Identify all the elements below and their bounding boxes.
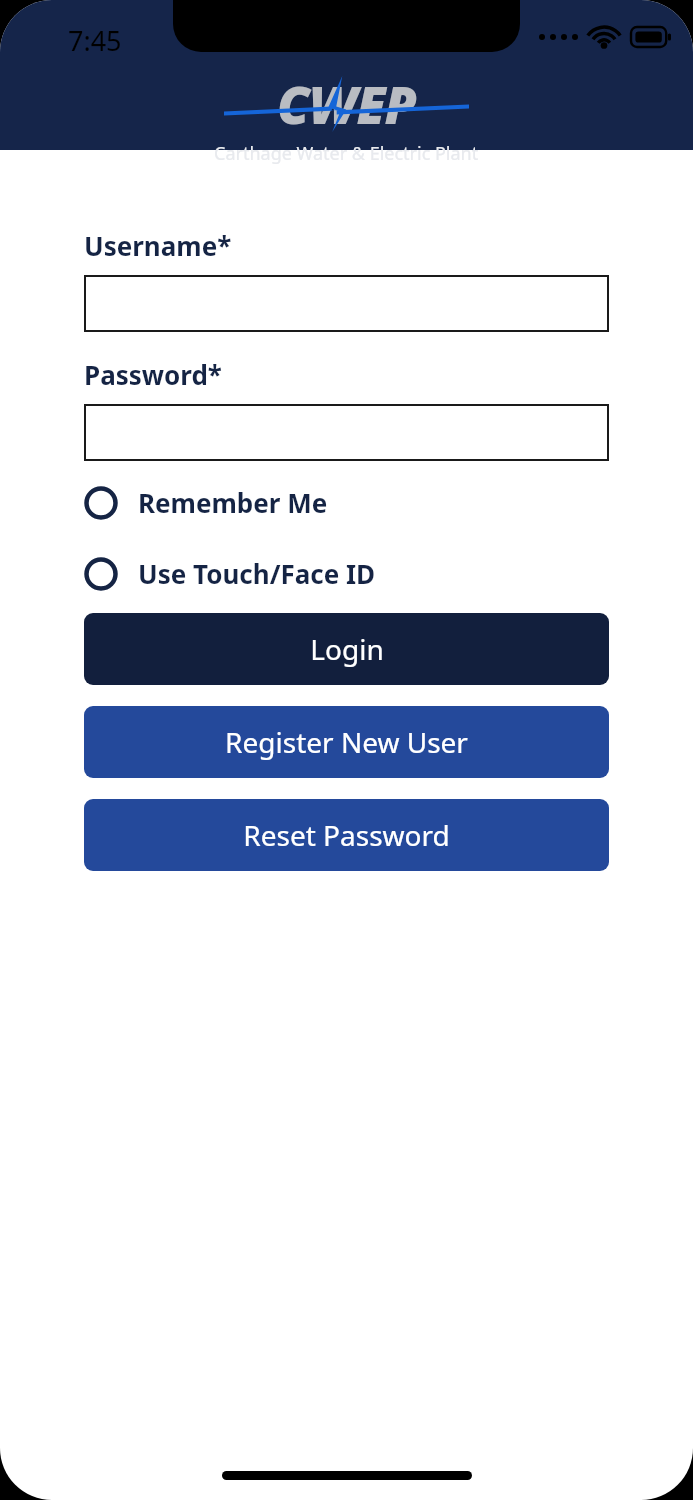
staticText: Remember Me <box>138 485 328 520</box>
staticText: Username* <box>84 228 232 263</box>
staticText: Password* <box>84 357 222 392</box>
button[interactable]: Reset Password <box>84 799 609 871</box>
staticText: Reset Password <box>243 816 450 854</box>
button[interactable]: Register New User <box>84 706 609 778</box>
staticText: 7:45 <box>68 22 122 59</box>
staticText: Use Touch/Face ID <box>138 556 376 591</box>
staticText: CWEP <box>277 68 417 139</box>
staticText: Login <box>310 630 384 668</box>
button[interactable] <box>84 275 609 332</box>
button[interactable]: Use Touch/Face ID <box>84 556 609 591</box>
staticText: Carthage Water & Electric Plant <box>214 141 479 166</box>
staticText: Register New User <box>225 723 468 761</box>
button[interactable] <box>84 404 609 461</box>
button[interactable]: Remember Me <box>84 485 609 520</box>
button[interactable]: Login <box>84 613 609 685</box>
